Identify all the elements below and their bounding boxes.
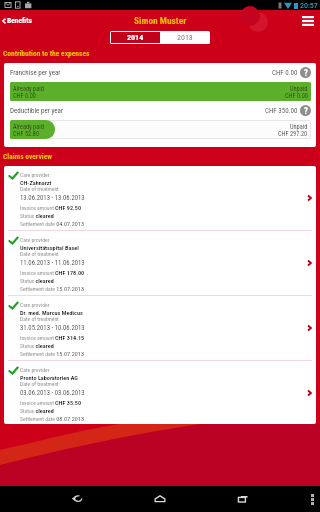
staticText: Care provider [20, 367, 50, 374]
staticText: Settlement date 15.07.2013 [20, 285, 84, 292]
button[interactable]: Home [149, 488, 171, 510]
staticText: CHF 297.20 [278, 130, 308, 137]
staticText: Benefits [7, 16, 32, 25]
button[interactable]: Care provider [4, 166, 316, 230]
staticText: Date of treatment [20, 251, 59, 258]
staticText: Deductible per year [10, 107, 64, 115]
staticText: Status cleared [20, 212, 54, 219]
staticText: ? [304, 106, 308, 116]
staticText: 2013 [177, 33, 193, 42]
staticText: Pronto Laboratorien AG [20, 374, 78, 381]
staticText: 31.05.2013 - 10.06.2013 [20, 324, 85, 332]
staticText: CHF 0.00 [272, 69, 298, 77]
button[interactable]: Benefits [0, 14, 36, 27]
staticText: Invoice amount CHF 92.50 [20, 204, 82, 211]
button[interactable]: Menu [296, 11, 320, 31]
staticText: Dr. med. Marcus Medicus [20, 309, 83, 316]
staticText: Unpaid [290, 85, 308, 92]
staticText: Settlement date 04.07.2013 [20, 220, 84, 227]
staticText: Date of treatment [20, 381, 59, 388]
staticText: Simon Muster [134, 15, 187, 26]
button[interactable]: Help [300, 105, 311, 116]
button[interactable]: Care provider [4, 361, 316, 424]
staticText: Franchise per year [10, 69, 61, 77]
staticText: Invoice amount CHF 35.50 [20, 399, 82, 406]
staticText: CHF 52.80 [13, 130, 40, 137]
staticText: Settlement date 08.07.2013 [20, 415, 84, 422]
staticText: 03.06.2013 - 03.06.2013 [20, 389, 85, 397]
staticText: Status cleared [20, 277, 54, 284]
button[interactable]: Recents [232, 488, 254, 510]
button[interactable]: Care provider [4, 231, 316, 295]
staticText: Care provider [20, 172, 50, 179]
staticText: Already paid [13, 85, 44, 92]
staticText: Care provider [20, 237, 50, 244]
staticText: 13.06.2013 - 13.06.2013 [20, 194, 85, 202]
staticText: Status cleared [20, 407, 54, 414]
staticText: Date of treatment [20, 186, 59, 193]
staticText: Contribution to the expenses [3, 49, 90, 58]
staticText: Already paid [13, 123, 44, 130]
staticText: Settlement date 15.07.2013 [20, 350, 84, 357]
staticText: Unpaid [290, 123, 308, 130]
button[interactable]: 2014 [111, 32, 160, 43]
staticText: CHF 0.00 [285, 92, 308, 99]
staticText: CHF 350.00 [265, 107, 298, 115]
button[interactable]: Care provider [4, 296, 316, 360]
staticText: 2014 [127, 33, 144, 42]
staticText: CH-Zahnarzt [20, 179, 52, 186]
button[interactable]: More options [304, 491, 320, 507]
staticText: Care provider [20, 302, 50, 309]
staticText: 11.06.2013 - 11.06.2013 [20, 259, 85, 267]
staticText: Invoice amount CHF 178.00 [20, 269, 85, 276]
staticText: 20:57 [300, 1, 318, 10]
staticText: Status cleared [20, 342, 54, 349]
staticText: Claims overview [3, 152, 53, 161]
staticText: Universitätsspital Basel [20, 244, 79, 251]
button[interactable]: 2013 [160, 32, 209, 43]
staticText: Invoice amount CHF 314.15 [20, 334, 85, 341]
button[interactable]: Back [66, 488, 88, 510]
staticText: Date of treatment [20, 316, 59, 323]
staticText: ? [304, 68, 308, 78]
staticText: CHF 0.00 [13, 92, 36, 99]
button[interactable]: Help [300, 67, 311, 78]
